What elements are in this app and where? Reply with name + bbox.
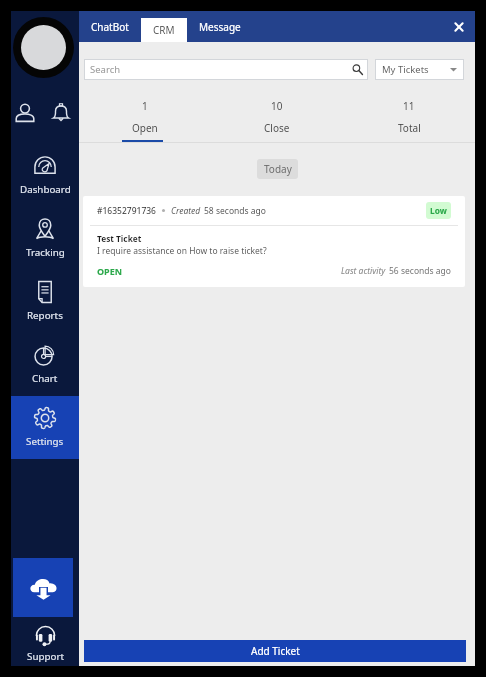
staticText: 56 seconds ago — [389, 265, 451, 277]
staticText: I require assistance on How to raise tic… — [97, 245, 267, 257]
button[interactable]: Notifications — [50, 102, 72, 124]
staticText: Add Ticket — [251, 644, 300, 658]
button[interactable]: Tracking — [11, 207, 79, 270]
staticText: Last activity — [341, 265, 386, 277]
button[interactable]: Support — [11, 624, 79, 663]
button[interactable]: Settings — [11, 396, 79, 459]
button[interactable]: 1 — [79, 94, 211, 143]
button[interactable]: Download — [13, 558, 73, 617]
button[interactable]: 10 — [211, 94, 343, 143]
staticText: Test Ticket — [97, 233, 142, 244]
button[interactable]: Today — [257, 159, 298, 179]
staticText: Message — [199, 20, 241, 34]
button[interactable]: Search — [84, 59, 368, 80]
staticText: Open — [132, 121, 158, 135]
button[interactable]: Dashboard — [11, 144, 79, 207]
button[interactable]: Profile — [14, 102, 36, 124]
staticText: OPEN — [97, 265, 123, 277]
staticText: CRM — [153, 23, 175, 37]
button[interactable]: Account avatar — [13, 17, 74, 78]
button[interactable]: CRM — [141, 18, 187, 42]
button[interactable]: My Tickets — [375, 59, 464, 80]
staticText: Dashboard — [20, 183, 71, 196]
staticText: Reports — [27, 309, 63, 322]
staticText: 58 seconds ago — [204, 205, 266, 217]
button[interactable]: ChatBot — [79, 11, 141, 42]
staticText: My Tickets — [382, 63, 429, 76]
staticText: Support — [27, 650, 64, 663]
staticText: Total — [398, 121, 421, 135]
staticText: Tracking — [26, 246, 65, 259]
button[interactable]: Message — [187, 11, 253, 42]
staticText: Created — [171, 205, 201, 217]
staticText: 1 — [142, 99, 148, 113]
staticText: 10 — [271, 99, 283, 113]
button[interactable]: Close — [452, 20, 466, 34]
staticText: Close — [264, 121, 290, 135]
staticText: #16352791736 — [97, 205, 156, 217]
staticText: Search — [90, 63, 121, 76]
button[interactable]: #16352791736 — [83, 196, 465, 287]
button[interactable]: Add Ticket — [84, 640, 466, 662]
staticText: ChatBot — [91, 20, 129, 34]
staticText: Settings — [26, 435, 64, 448]
button[interactable]: Chart — [11, 333, 79, 396]
button[interactable]: Reports — [11, 270, 79, 333]
staticText: Chart — [32, 372, 58, 385]
staticText: 11 — [403, 99, 415, 113]
button[interactable]: 11 — [343, 94, 475, 143]
staticText: Low — [430, 205, 447, 216]
staticText: Today — [264, 162, 292, 176]
